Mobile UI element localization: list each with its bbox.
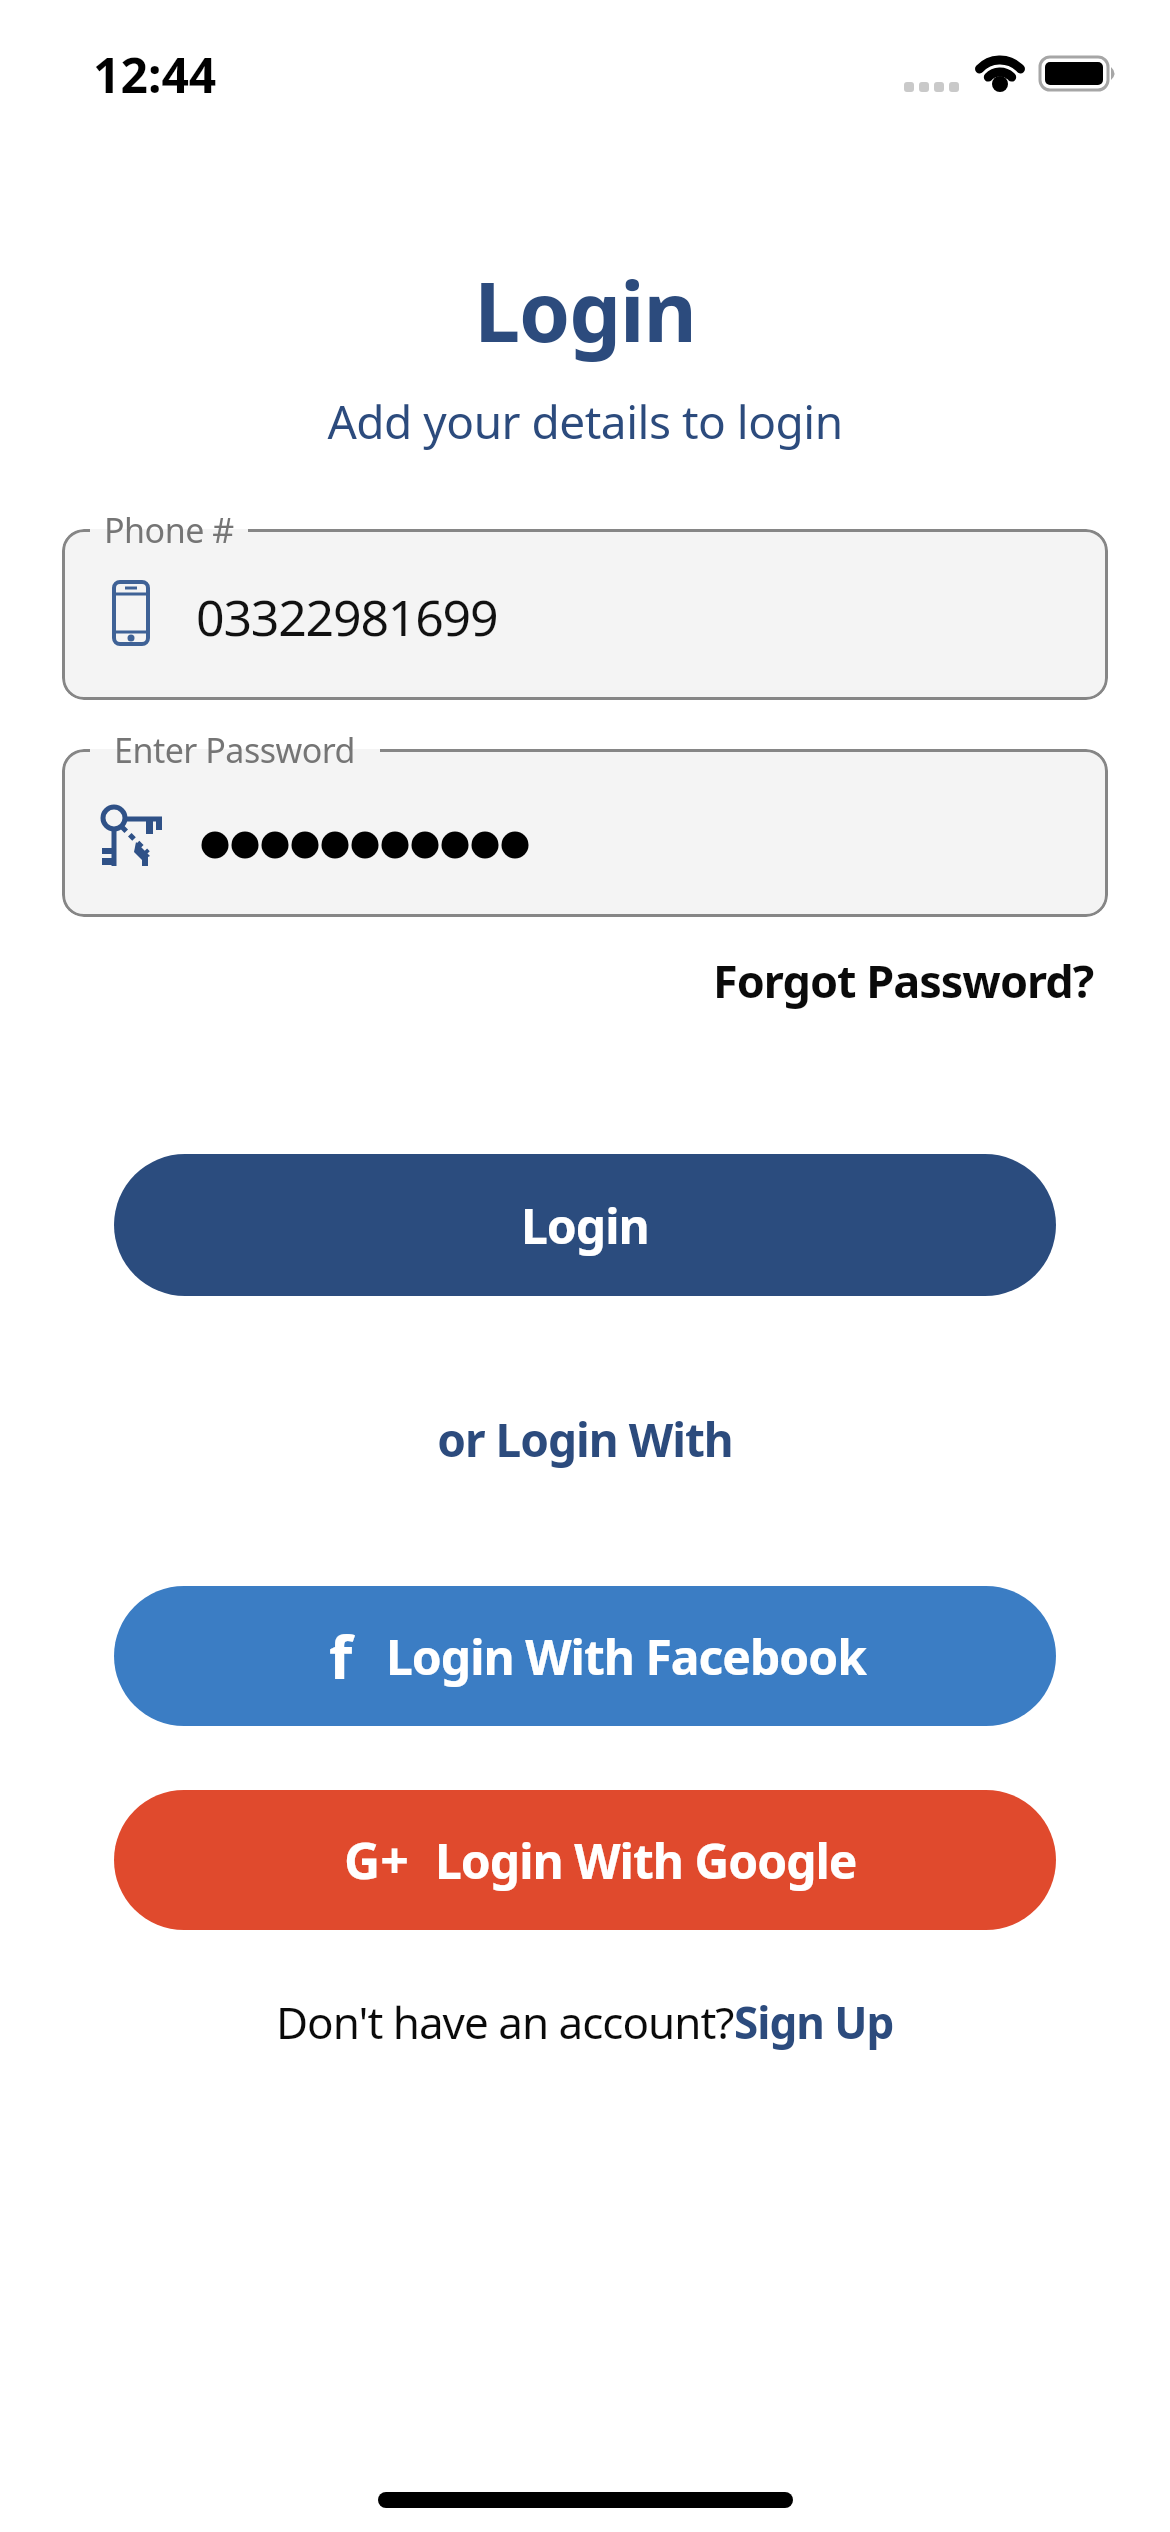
button[interactable]: G+: [114, 1790, 1056, 1930]
button[interactable]: Sign Up: [734, 1992, 894, 2052]
staticText: Login With Google: [435, 1828, 857, 1893]
staticText: 12:44: [93, 42, 217, 107]
staticText: f: [329, 1615, 353, 1697]
staticText: Login: [521, 1193, 649, 1258]
button[interactable]: [62, 749, 1108, 917]
staticText: Login: [474, 254, 696, 366]
staticText: Phone #: [104, 507, 234, 551]
button[interactable]: f: [114, 1586, 1056, 1726]
button[interactable]: Login: [114, 1154, 1056, 1296]
staticText: Login With Facebook: [386, 1624, 867, 1689]
staticText: Don't have an account?: [276, 1992, 734, 2052]
button[interactable]: Forgot Password?: [713, 950, 1094, 1011]
button[interactable]: [62, 529, 1108, 700]
staticText: G+: [344, 1826, 409, 1894]
staticText: or Login With: [437, 1408, 733, 1471]
staticText: 03322981699: [196, 583, 498, 651]
staticText: Enter Password: [114, 727, 356, 771]
staticText: Add your details to login: [327, 390, 843, 453]
